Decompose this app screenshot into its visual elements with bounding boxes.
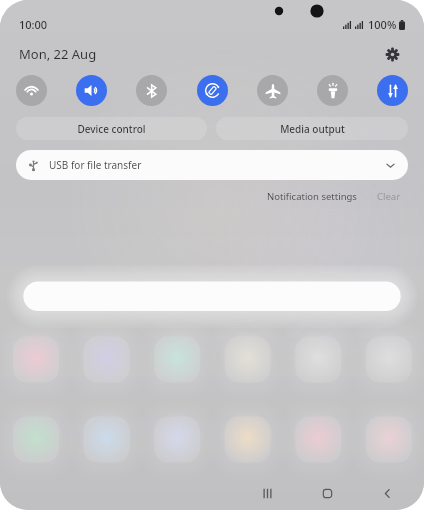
button[interactable]: Settings <box>379 41 405 67</box>
button[interactable]: Wi-Fi <box>16 75 47 106</box>
button[interactable]: Device control <box>16 117 207 140</box>
button[interactable]: Home <box>312 478 342 508</box>
button[interactable]: Auto rotate <box>197 75 228 106</box>
button[interactable]: Flashlight <box>317 75 348 106</box>
staticText: Clear <box>377 190 401 203</box>
button[interactable]: Recents <box>252 478 282 508</box>
button[interactable]: Back <box>372 478 402 508</box>
button[interactable]: Flight mode <box>257 75 288 106</box>
button[interactable]: Notification settings <box>263 188 361 205</box>
button[interactable]: Clear <box>373 188 405 205</box>
staticText: Mon, 22 Aug <box>19 45 97 63</box>
button[interactable]: Mobile data <box>377 75 408 106</box>
button[interactable]: Sound <box>76 75 107 106</box>
button[interactable]: USB for file transfer <box>16 150 408 180</box>
staticText: 10:00 <box>19 17 48 32</box>
staticText: USB for file transfer <box>49 158 142 172</box>
staticText: Notification settings <box>267 190 357 203</box>
button[interactable]: Bluetooth <box>136 75 167 106</box>
staticText: Device control <box>77 122 146 136</box>
staticText: 100% <box>368 17 397 32</box>
staticText: Media output <box>280 122 345 136</box>
button[interactable]: Media output <box>216 117 408 140</box>
